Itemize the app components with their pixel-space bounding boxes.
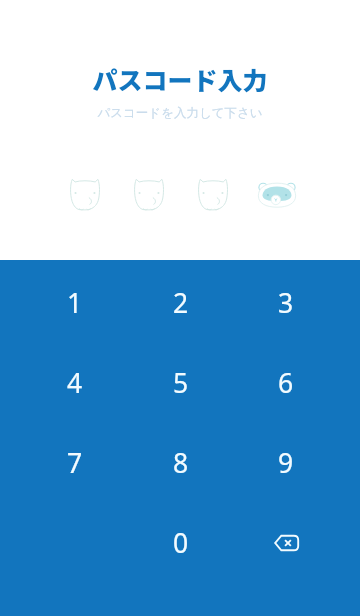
button[interactable]: 4 bbox=[22, 343, 128, 423]
staticText: 9 bbox=[278, 445, 294, 481]
staticText: 5 bbox=[173, 365, 189, 401]
button[interactable]: 6 bbox=[233, 343, 338, 423]
button[interactable]: 1 bbox=[22, 263, 128, 343]
button[interactable]: 0 bbox=[128, 503, 233, 583]
button[interactable]: 5 bbox=[128, 343, 233, 423]
staticText: 1 bbox=[67, 285, 83, 321]
staticText: 4 bbox=[67, 365, 83, 401]
button[interactable]: 8 bbox=[128, 423, 233, 503]
staticText: パスコードを入力して下さい bbox=[97, 105, 263, 121]
staticText: 0 bbox=[173, 525, 189, 561]
staticText: 7 bbox=[67, 445, 83, 481]
button[interactable]: 3 bbox=[233, 263, 338, 343]
staticText: 6 bbox=[278, 365, 294, 401]
button[interactable]: 9 bbox=[233, 423, 338, 503]
staticText: 2 bbox=[173, 285, 189, 321]
staticText: パスコード入力 bbox=[92, 61, 268, 97]
staticText: 3 bbox=[278, 285, 294, 321]
staticText: 8 bbox=[173, 445, 189, 481]
button[interactable]: 7 bbox=[22, 423, 128, 503]
button[interactable]: 2 bbox=[128, 263, 233, 343]
button[interactable]: Delete bbox=[233, 503, 338, 583]
